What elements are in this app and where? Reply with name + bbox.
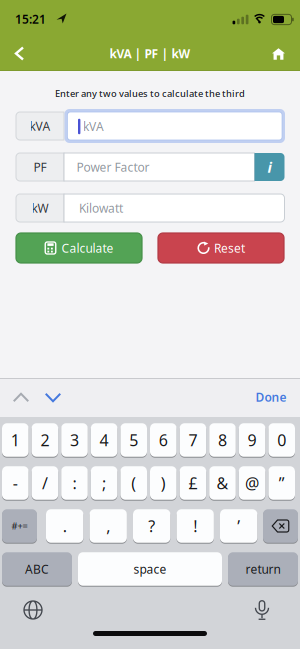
button[interactable]: £ (180, 466, 206, 500)
button[interactable]: Previous field (8, 384, 34, 410)
staticText: 8 (218, 429, 227, 451)
button[interactable]: 1 (2, 423, 29, 457)
staticText: , (106, 515, 110, 537)
button[interactable]: #+= (2, 509, 37, 543)
staticText: 7 (188, 429, 197, 451)
staticText: / (42, 472, 48, 494)
staticText: return (245, 561, 280, 577)
staticText: Reset (214, 240, 245, 256)
staticText: ) (161, 472, 166, 494)
staticText: ’ (237, 515, 240, 537)
staticText: Kilowatt (79, 200, 123, 216)
button[interactable]: 4 (91, 423, 117, 457)
button[interactable]: 7 (180, 423, 206, 457)
staticText: 5 (129, 429, 138, 451)
button[interactable]: - (2, 466, 29, 500)
button[interactable]: Delete (263, 509, 298, 543)
button[interactable]: ABC (2, 552, 72, 586)
button[interactable]: ) (150, 466, 177, 500)
staticText: ; (102, 472, 106, 494)
button[interactable]: return (228, 552, 298, 586)
button[interactable]: 2 (32, 423, 58, 457)
button[interactable]: @ (239, 466, 265, 500)
staticText: : (72, 472, 76, 494)
button[interactable]: . (46, 509, 83, 543)
button[interactable]: kVA (64, 109, 285, 143)
staticText: £ (188, 472, 197, 494)
button[interactable]: ? (133, 509, 170, 543)
button[interactable]: ! (176, 509, 214, 543)
staticText: 1 (11, 429, 20, 451)
button[interactable]: 3 (61, 423, 88, 457)
button[interactable]: Done (246, 384, 296, 410)
button[interactable]: Back (4, 36, 34, 70)
staticText: & (216, 472, 228, 494)
button[interactable]: & (209, 466, 236, 500)
staticText: ” (279, 472, 285, 494)
staticText: ! (193, 515, 197, 537)
staticText: 4 (100, 429, 109, 451)
staticText: @ (245, 472, 259, 494)
button[interactable]: Home (263, 37, 293, 71)
staticText: kVA (83, 118, 104, 134)
button[interactable]: 6 (150, 423, 177, 457)
staticText: Calculate (61, 240, 113, 256)
button[interactable]: ; (91, 466, 117, 500)
button[interactable]: Next field (40, 384, 66, 410)
button[interactable]: Power factor info (254, 153, 284, 181)
staticText: 2 (40, 429, 49, 451)
button[interactable]: ’ (220, 509, 257, 543)
staticText: 0 (277, 429, 286, 451)
button[interactable]: Kilowatt (64, 194, 284, 222)
button[interactable]: 9 (239, 423, 265, 457)
staticText: ( (131, 472, 136, 494)
button[interactable]: Reset (158, 233, 284, 263)
staticText: Enter any two values to calculate the th… (55, 87, 245, 100)
staticText: kW (31, 200, 48, 216)
button[interactable]: space (78, 552, 222, 586)
staticText: 15:21 (15, 11, 46, 27)
button[interactable]: Power Factor (64, 153, 254, 181)
staticText: kVA | PF | kW (109, 45, 190, 61)
button[interactable]: , (89, 509, 127, 543)
staticText: #+= (11, 520, 27, 532)
button[interactable]: 0 (268, 423, 295, 457)
staticText: ABC (25, 561, 49, 577)
button[interactable]: ( (120, 466, 147, 500)
button[interactable]: Dictation (247, 595, 277, 625)
staticText: 3 (70, 429, 79, 451)
staticText: - (13, 472, 18, 494)
staticText: i (267, 157, 271, 177)
button[interactable]: : (61, 466, 88, 500)
staticText: kVA (29, 118, 50, 134)
staticText: . (63, 515, 67, 537)
staticText: 6 (159, 429, 168, 451)
button[interactable]: Next keyboard (18, 595, 48, 625)
button[interactable]: Calculate (16, 233, 142, 263)
staticText: space (133, 561, 166, 577)
staticText: 9 (248, 429, 257, 451)
staticText: Done (255, 389, 286, 405)
button[interactable]: / (32, 466, 58, 500)
button[interactable]: 5 (120, 423, 147, 457)
button[interactable]: 8 (209, 423, 236, 457)
staticText: ? (148, 515, 155, 537)
staticText: PF (33, 159, 46, 175)
staticText: Power Factor (76, 159, 149, 175)
button[interactable]: ” (268, 466, 295, 500)
